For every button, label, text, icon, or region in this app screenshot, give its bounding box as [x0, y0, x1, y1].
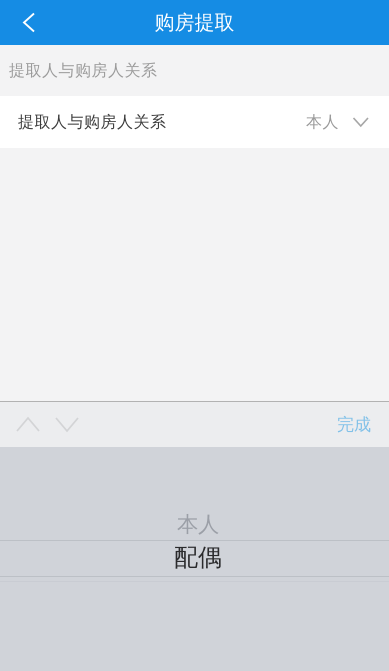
staticText: 完成 [337, 414, 371, 435]
staticText: 提取人与购房人关系 [9, 60, 157, 81]
button[interactable]: 完成 [337, 402, 389, 447]
staticText: 配偶 [174, 542, 222, 573]
button[interactable]: 配偶 [0, 540, 389, 575]
staticText: 购房提取 [154, 10, 234, 35]
button[interactable]: Previous field [0, 402, 56, 447]
button[interactable]: 提取人与购房人关系 [0, 96, 389, 148]
staticText: 本人 [306, 112, 338, 132]
button[interactable]: 本人 [0, 509, 389, 540]
button[interactable]: Back [0, 0, 48, 45]
staticText: 本人 [177, 511, 219, 538]
button[interactable]: Next field [56, 402, 95, 447]
staticText: 提取人与购房人关系 [18, 112, 166, 132]
